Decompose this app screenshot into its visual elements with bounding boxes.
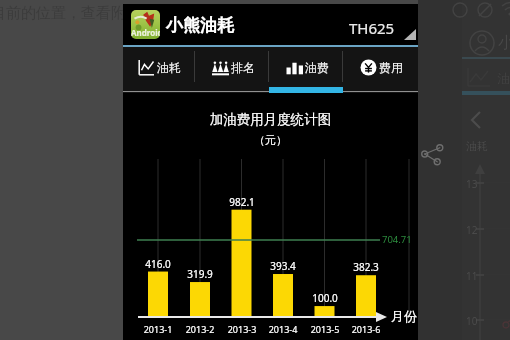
staticText: 目前的位置，查看附近 xyxy=(0,4,141,23)
staticText: 393.4 xyxy=(263,259,303,273)
staticText: 416.0 xyxy=(138,257,178,271)
staticText: 月份 xyxy=(391,308,417,324)
button[interactable]: 油耗 xyxy=(123,47,196,93)
staticText: 费用 xyxy=(379,60,403,75)
staticText: 油耗 xyxy=(157,60,181,75)
button[interactable]: 排名 xyxy=(196,47,270,93)
button[interactable]: 油费 xyxy=(270,47,344,93)
staticText: 油费 xyxy=(305,60,329,75)
staticText: 加油费用月度统计图 xyxy=(123,111,418,128)
staticText: 2013-6 xyxy=(344,323,388,335)
staticText: 12 xyxy=(466,223,478,237)
staticText: 油耗 xyxy=(466,139,488,153)
staticText: 小 xyxy=(498,33,510,53)
staticText: （元） xyxy=(123,133,418,147)
staticText: 2013-2 xyxy=(178,323,222,335)
staticText: 382.3 xyxy=(346,260,386,274)
staticText: 2013-1 xyxy=(136,323,180,335)
staticText: 319.9 xyxy=(180,267,220,281)
staticText: 油 xyxy=(497,70,510,86)
staticText: 11 xyxy=(466,269,478,283)
staticText: 排名 xyxy=(231,60,255,75)
staticText: 2013-5 xyxy=(303,323,347,335)
staticText: 2013-3 xyxy=(220,323,264,335)
staticText: 100.0 xyxy=(305,291,345,305)
staticText: 小熊油耗 xyxy=(166,15,234,36)
staticText: 982.1 xyxy=(222,195,262,209)
staticText: 13 xyxy=(466,177,478,191)
staticText: 10 xyxy=(466,314,478,328)
staticText: 704.71 xyxy=(382,233,412,246)
button[interactable]: 费用 xyxy=(344,47,418,93)
button[interactable]: Share xyxy=(419,141,445,167)
staticText: TH625 xyxy=(349,18,395,38)
staticText: Android xyxy=(131,27,160,38)
staticText: 2013-4 xyxy=(261,323,305,335)
